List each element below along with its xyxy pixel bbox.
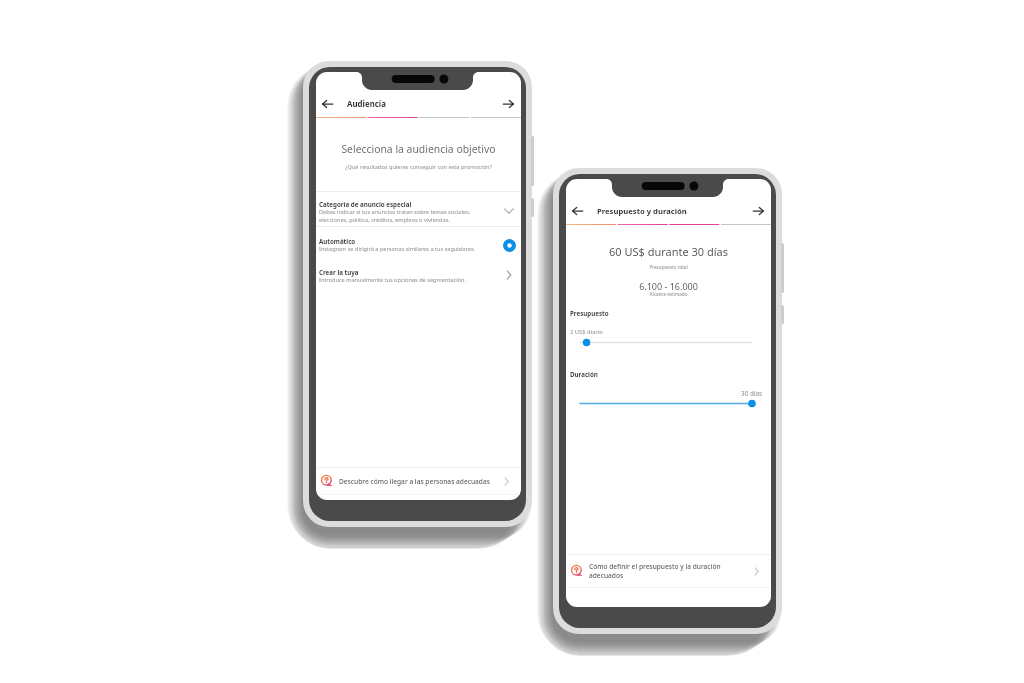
staticText: Presupuesto y duración [597,206,687,216]
staticText: Audiencia [347,99,386,110]
button[interactable]: Back [566,199,588,223]
button[interactable]: Categoría de anuncio especial [316,192,521,226]
staticText: 2 US$ diario [570,328,603,336]
button[interactable]: Next [496,92,521,116]
staticText: 60 US$ durante 30 días [566,244,771,259]
staticText: 30 días [570,389,762,398]
staticText: Cómo definir el presupuesto y la duració… [589,562,750,580]
staticText: Instagram se dirigirá a personas similar… [319,245,476,253]
staticText: Debes indicar si tus anuncios tratan sob… [319,208,471,224]
staticText: Descubre cómo llegar a las personas adec… [339,477,500,486]
button[interactable]: Next [746,199,771,223]
staticText: Selecciona la audiencia objetivo [320,142,517,156]
staticText: Presupuesto [570,309,609,317]
staticText: Crear la tuya [319,268,359,276]
button[interactable]: Automático [316,229,521,259]
staticText: ¿Qué resultados quieres conseguir con es… [320,163,517,171]
staticText: Automático [319,237,356,245]
staticText: Duración [570,370,598,378]
button[interactable]: Cómo definir el presupuesto y la duració… [566,555,771,587]
button[interactable]: Crear la tuya [316,260,521,290]
button[interactable]: Descubre cómo llegar a las personas adec… [316,468,521,494]
staticText: Alcance estimado [566,291,771,297]
button[interactable]: Back [316,92,338,116]
staticText: 6.100 - 16.000 [566,280,771,292]
staticText: Introduce manualmente tus opciones de se… [319,276,466,284]
staticText: Presupuesto total [566,264,771,270]
staticText: Categoría de anuncio especial [319,200,412,208]
